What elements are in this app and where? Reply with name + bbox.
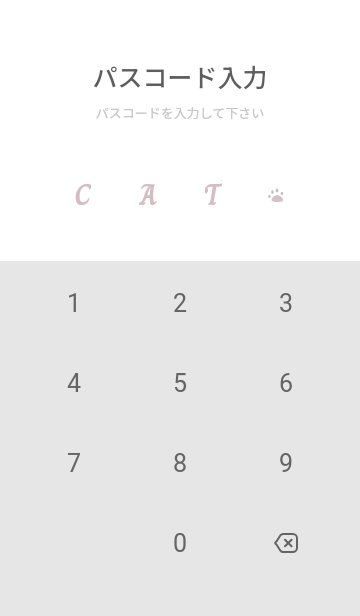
staticText: 6 <box>279 369 294 398</box>
button[interactable]: 7 <box>21 423 127 503</box>
button[interactable]: 4 <box>21 343 127 423</box>
button[interactable]: 2 <box>127 263 233 343</box>
staticText: パスコードを入力して下さい <box>0 103 360 122</box>
button[interactable]: Delete <box>233 503 339 583</box>
staticText: 4 <box>67 369 82 398</box>
staticText: A <box>139 172 157 216</box>
staticText: 7 <box>67 449 82 478</box>
staticText: 9 <box>279 449 294 478</box>
staticText: C <box>74 172 91 216</box>
staticText: 1 <box>67 289 82 318</box>
staticText: 0 <box>173 529 188 558</box>
button[interactable]: 9 <box>233 423 339 503</box>
staticText: T <box>203 172 222 216</box>
staticText: 3 <box>279 289 294 318</box>
button[interactable]: 3 <box>233 263 339 343</box>
staticText: 8 <box>173 449 188 478</box>
button[interactable]: 0 <box>127 503 233 583</box>
staticText: パスコード入力 <box>0 58 360 94</box>
button[interactable]: 1 <box>21 263 127 343</box>
staticText: 2 <box>173 289 188 318</box>
other: Delete <box>264 521 308 565</box>
button[interactable]: 8 <box>127 423 233 503</box>
button[interactable]: 6 <box>233 343 339 423</box>
staticText: 5 <box>173 369 188 398</box>
button[interactable]: 5 <box>127 343 233 423</box>
